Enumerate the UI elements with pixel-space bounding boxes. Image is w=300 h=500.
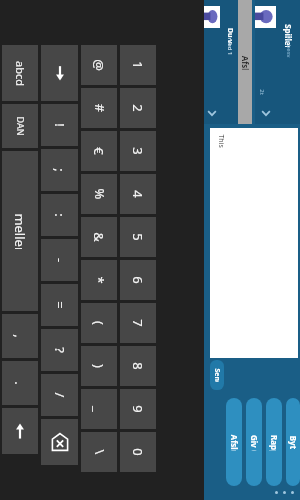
button[interactable]: : xyxy=(41,194,78,236)
staticText: Send xyxy=(212,368,222,382)
button[interactable]: 2 xyxy=(120,88,156,128)
button[interactable]: ( xyxy=(81,303,117,343)
staticText: , xyxy=(11,334,29,338)
button[interactable]: = xyxy=(41,284,78,326)
button[interactable]: Rapporter spørgsmål xyxy=(266,398,282,486)
staticText: This wp qb player is pretty cool... xyxy=(216,134,226,148)
button[interactable]: . xyxy=(2,361,38,405)
staticText: : xyxy=(51,213,69,217)
button[interactable]: - xyxy=(41,239,78,281)
staticText: Afslut Tur xyxy=(228,434,239,450)
staticText: med 19500 mod 17500 xyxy=(225,37,233,54)
button[interactable]: Spiller med xyxy=(255,0,300,124)
staticText: Spiller med xyxy=(283,24,294,47)
staticText: 2 xyxy=(129,104,147,112)
button[interactable]: 3 xyxy=(120,131,156,171)
staticText: ) xyxy=(90,364,108,368)
staticText: Du vandt over xyxy=(224,27,234,44)
button[interactable]: 7 xyxy=(120,303,156,343)
button[interactable]: * xyxy=(81,260,117,300)
staticText: * xyxy=(90,276,108,284)
button[interactable]: Shift xyxy=(2,408,38,454)
button[interactable]: 6 xyxy=(120,260,156,300)
button[interactable]: / xyxy=(41,374,78,416)
staticText: 7 xyxy=(129,319,147,327)
staticText: - xyxy=(50,257,68,262)
button[interactable]: Afsluttede spil xyxy=(238,0,252,124)
button[interactable]: Afslut Tur xyxy=(226,398,242,486)
button[interactable]: 1 xyxy=(120,45,156,85)
staticText: € xyxy=(90,147,108,155)
staticText: @ xyxy=(90,59,108,71)
staticText: _ xyxy=(90,406,108,412)
staticText: ? xyxy=(51,347,69,353)
button[interactable]: More options xyxy=(275,491,294,494)
button[interactable]: This wp qb player is pretty cool... xyxy=(210,128,298,358)
staticText: = xyxy=(51,301,69,309)
button[interactable]: ; xyxy=(41,149,78,191)
button[interactable]: Enter xyxy=(41,45,78,101)
staticText: ; xyxy=(51,168,69,172)
staticText: & xyxy=(90,232,108,242)
staticText: 4 xyxy=(129,190,147,198)
staticText: Afsluttede spil xyxy=(239,55,250,69)
button[interactable]: @ xyxy=(81,45,117,85)
staticText: 8 xyxy=(129,362,147,370)
button[interactable]: 9 xyxy=(120,389,156,429)
staticText: Rapporter spørgsmål xyxy=(268,434,279,450)
staticText: 6 xyxy=(129,276,147,284)
staticText: % xyxy=(90,188,108,199)
button[interactable]: mellemrum xyxy=(2,151,38,311)
staticText: ( xyxy=(90,321,108,325)
button[interactable]: ? xyxy=(41,329,78,371)
button[interactable]: ! xyxy=(41,104,78,146)
button[interactable]: & xyxy=(81,217,117,257)
button[interactable]: # xyxy=(81,88,117,128)
button[interactable]: ) xyxy=(81,346,117,386)
button[interactable]: DAN xyxy=(2,104,38,148)
button[interactable]: _ xyxy=(81,389,117,429)
staticText: 2t xyxy=(258,89,266,95)
staticText: . xyxy=(11,381,29,385)
staticText: 9 xyxy=(129,405,147,413)
staticText: 1 xyxy=(129,61,147,69)
button[interactable]: \ xyxy=(81,432,117,472)
staticText: 0 xyxy=(129,448,147,456)
button[interactable]: 0 xyxy=(120,432,156,472)
button[interactable]: € xyxy=(81,131,117,171)
staticText: DAN xyxy=(14,116,26,135)
staticText: # xyxy=(90,103,108,112)
staticText: 5 xyxy=(129,233,147,241)
button[interactable]: % xyxy=(81,174,117,214)
staticText: / xyxy=(50,392,68,397)
button[interactable]: abcd xyxy=(2,45,38,101)
staticText: Giv Op xyxy=(248,434,259,450)
staticText: abcd xyxy=(13,61,28,86)
button[interactable]: 4 xyxy=(120,174,156,214)
staticText: ! xyxy=(51,123,69,127)
button[interactable]: Byt Spørgsmål xyxy=(286,398,300,486)
button[interactable]: 5 xyxy=(120,217,156,257)
staticText: Du besvarede 5 spørgsmål korrekt xyxy=(284,34,292,57)
button[interactable]: , xyxy=(2,314,38,358)
staticText: \ xyxy=(90,449,108,454)
staticText: Byt Spørgsmål xyxy=(287,435,298,449)
button[interactable]: Du vandt over xyxy=(204,0,238,124)
button[interactable]: Send xyxy=(210,360,224,390)
button[interactable]: Backspace xyxy=(41,419,78,465)
staticText: 3 xyxy=(129,147,147,155)
staticText: mellemrum xyxy=(11,213,29,249)
button[interactable]: Giv Op xyxy=(246,398,262,486)
button[interactable]: 8 xyxy=(120,346,156,386)
